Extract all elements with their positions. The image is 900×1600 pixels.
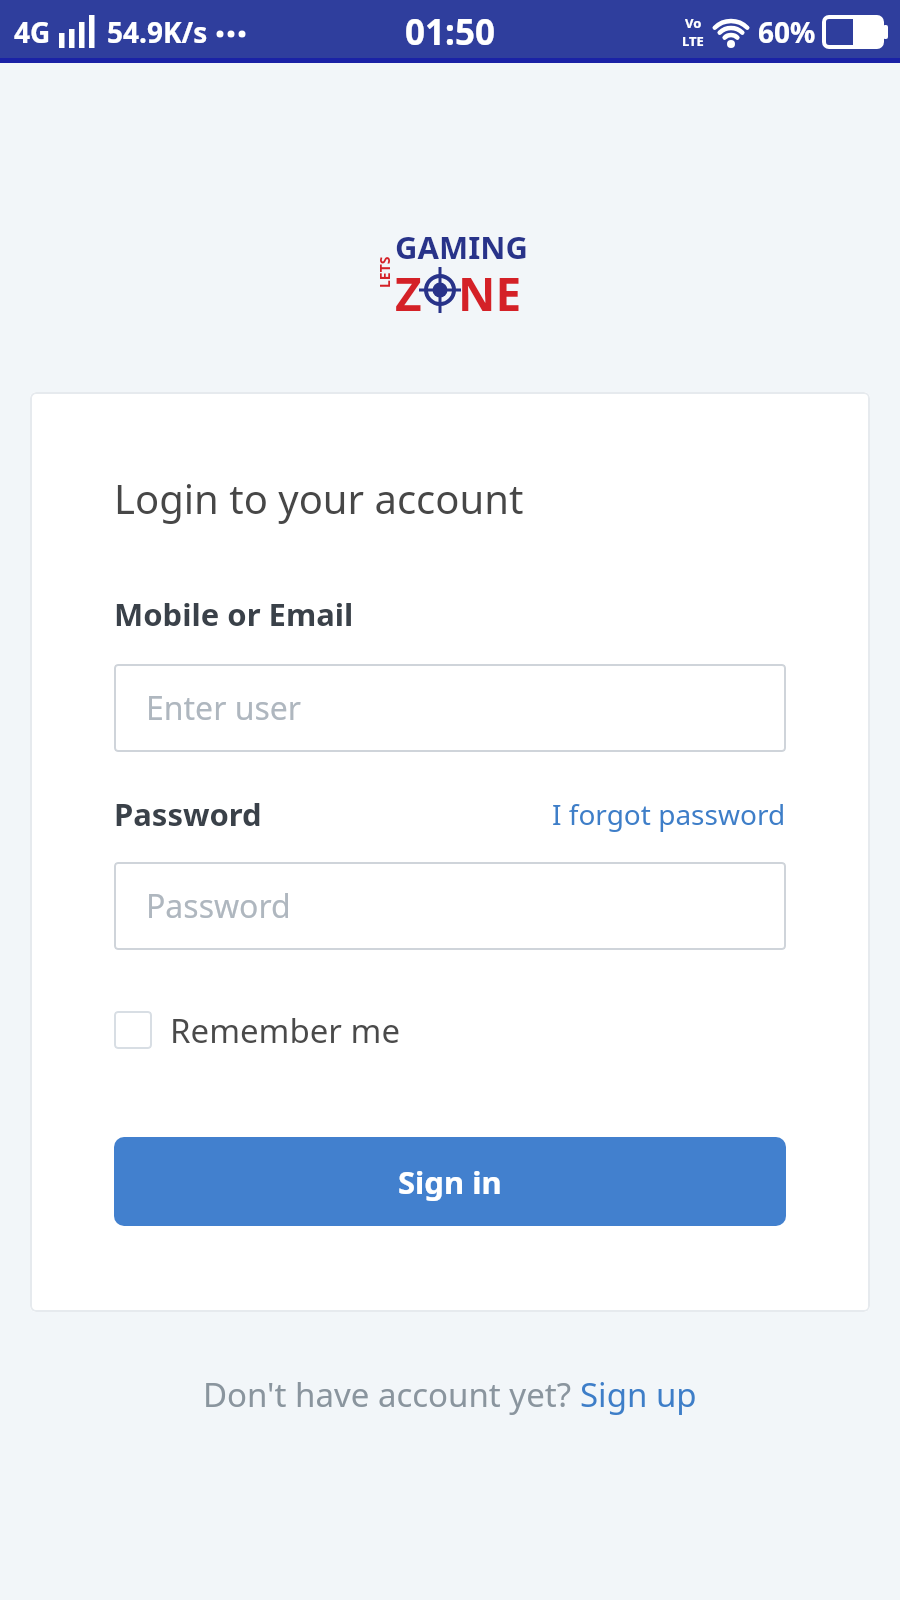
button[interactable]: I forgot password	[552, 795, 786, 833]
staticText: GAMING	[395, 226, 528, 262]
staticText: Login to your account	[114, 471, 524, 525]
staticText: 60%	[758, 13, 816, 51]
staticText: 4G	[14, 13, 51, 51]
staticText: NE	[458, 262, 522, 318]
staticText: 01:50	[405, 8, 495, 56]
button[interactable]: Sign up	[580, 1372, 697, 1417]
staticText: Sign in	[398, 1161, 502, 1203]
button[interactable]: Enter user	[114, 664, 786, 752]
button[interactable]: Remember me	[114, 1008, 401, 1052]
staticText: Password	[114, 793, 262, 835]
button[interactable]: Sign in	[114, 1137, 786, 1226]
staticText: Remember me	[170, 1008, 401, 1052]
staticText: Password	[146, 884, 291, 928]
staticText: Don't have account yet?	[203, 1372, 580, 1417]
staticText: I forgot password	[552, 795, 786, 833]
staticText: Mobile or Email	[114, 593, 354, 635]
staticText: Sign up	[580, 1372, 697, 1417]
staticText: LETS	[375, 256, 394, 288]
staticText: Enter user	[146, 686, 302, 730]
staticText: Z	[395, 262, 422, 318]
staticText: 54.9K/s	[107, 13, 208, 51]
staticText: LTE	[682, 32, 704, 50]
staticText: Vo	[685, 14, 702, 32]
button[interactable]: Password	[114, 862, 786, 950]
